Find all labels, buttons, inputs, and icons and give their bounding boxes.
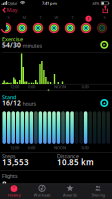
staticText: M bbox=[22, 15, 26, 20]
staticText: Exercise bbox=[2, 36, 23, 43]
staticText: 34% bbox=[92, 1, 99, 6]
button[interactable]: Day T bbox=[71, 15, 73, 20]
button[interactable]: Day W bbox=[54, 15, 58, 20]
staticText: Optus bbox=[7, 1, 17, 6]
staticText: T bbox=[71, 15, 73, 20]
staticText: Workouts bbox=[33, 192, 50, 198]
staticText: S bbox=[7, 15, 9, 20]
staticText: Sharing bbox=[91, 192, 104, 198]
staticText: 10.85 km bbox=[57, 157, 94, 167]
staticText: T bbox=[39, 15, 41, 20]
staticText: Steps bbox=[2, 153, 16, 160]
staticText: Distance bbox=[57, 153, 79, 160]
staticText: NOON bbox=[54, 145, 66, 150]
staticText: Awards bbox=[63, 192, 77, 198]
staticText: 12:00 bbox=[10, 145, 19, 150]
staticText: Flights bbox=[2, 172, 18, 179]
staticText: W bbox=[54, 15, 58, 20]
button[interactable]: History bbox=[0, 184, 28, 199]
button[interactable]: Friday bbox=[85, 16, 92, 22]
button[interactable]: Day M bbox=[22, 15, 26, 20]
staticText: May bbox=[7, 6, 18, 14]
button[interactable]: Awards bbox=[56, 184, 84, 199]
staticText: minutes bbox=[22, 42, 42, 49]
staticText: 12:00 bbox=[10, 84, 19, 89]
button[interactable]: Sharing bbox=[84, 184, 112, 199]
button[interactable]: Day S bbox=[7, 15, 9, 20]
staticText: 6:00 bbox=[81, 84, 88, 89]
staticText: 8 bbox=[2, 179, 7, 190]
staticText: History bbox=[7, 192, 20, 198]
button[interactable]: Back bbox=[0, 5, 20, 15]
button[interactable]: Workouts bbox=[28, 184, 56, 199]
staticText: 6:00 bbox=[28, 145, 35, 150]
staticText: F bbox=[87, 16, 89, 21]
staticText: NOON bbox=[54, 84, 66, 89]
staticText: 6:00 bbox=[81, 145, 88, 150]
staticText: 16/12 bbox=[2, 98, 21, 107]
staticText: 13,553 bbox=[2, 157, 29, 167]
staticText: 6:00 bbox=[28, 84, 35, 89]
button[interactable]: Day S bbox=[103, 15, 105, 20]
staticText: Stand bbox=[2, 94, 16, 101]
button[interactable]: Day T bbox=[39, 15, 41, 20]
staticText: 7:41 pm bbox=[42, 1, 57, 6]
staticText: 54/30 bbox=[2, 40, 21, 49]
staticText: S bbox=[103, 15, 105, 20]
staticText: hours bbox=[22, 100, 36, 107]
button[interactable]: Share bbox=[99, 4, 111, 14]
